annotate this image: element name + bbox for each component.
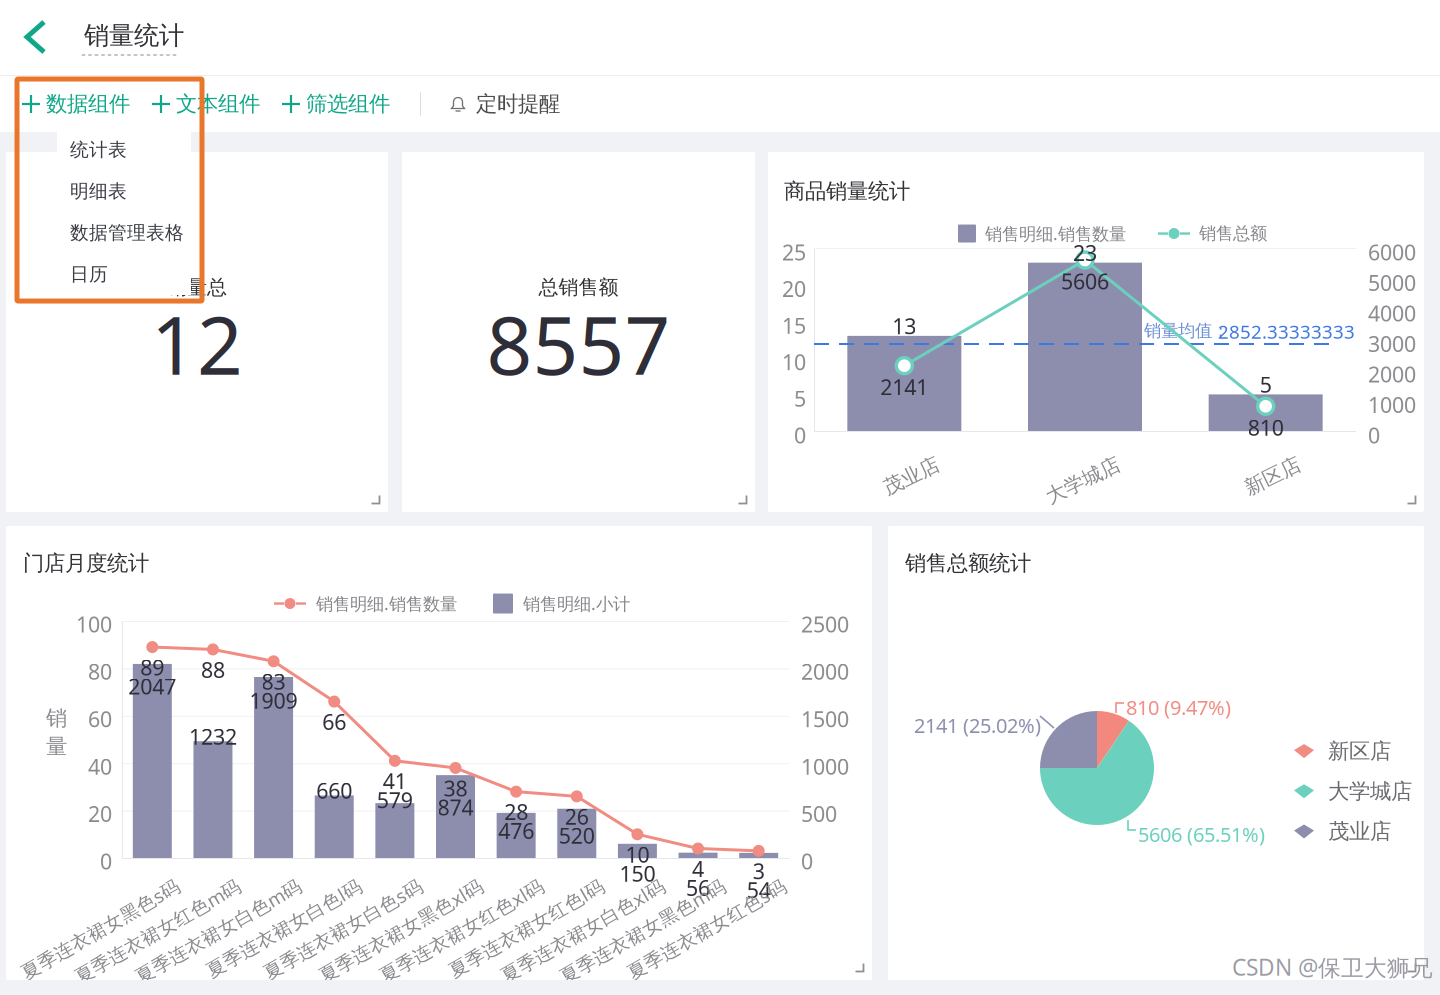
staticText: 销售明细.小计 (523, 592, 630, 615)
button[interactable]: 数据组件 (22, 91, 130, 117)
staticText: 5 (794, 384, 806, 413)
staticText: CSDN @保卫大狮兄 (1232, 952, 1433, 982)
button[interactable]: Back (10, 0, 66, 75)
staticText: 4 (692, 854, 704, 883)
staticText: 60 (88, 705, 112, 733)
staticText: 660 (316, 776, 352, 805)
staticText: 销售明细.销售数量 (316, 592, 457, 615)
staticText: 810 (1248, 413, 1284, 442)
staticText: 5000 (1368, 268, 1416, 297)
staticText: 销售总额统计 (905, 550, 1031, 576)
staticText: 茂业店 (1328, 818, 1391, 845)
staticText: 新区店 (1240, 451, 1300, 475)
button[interactable]: Resize widget (852, 960, 868, 976)
staticText: 89 (140, 653, 164, 681)
staticText: 明细表 (70, 180, 127, 203)
staticText: 15 (782, 311, 806, 339)
button[interactable]: 数据管理表格 (57, 212, 191, 253)
staticText: 数据组件 (46, 91, 130, 117)
staticText: 4000 (1368, 299, 1416, 327)
staticText: 80 (88, 657, 112, 686)
button[interactable]: 文本组件 (152, 91, 260, 117)
staticText: 476 (498, 817, 534, 845)
staticText: 874 (437, 793, 473, 821)
staticText: 夏季连衣裙女红色m码 (51, 872, 239, 896)
staticText: 5606 (1061, 267, 1109, 295)
staticText: 28 (504, 798, 528, 826)
staticText: 5606 (65.51%) (1138, 821, 1265, 848)
staticText: 2000 (801, 657, 849, 686)
staticText: 1909 (250, 686, 298, 715)
staticText: 销 (46, 705, 67, 731)
button[interactable]: Resize widget (735, 492, 751, 508)
staticText: 8557 (486, 291, 670, 397)
staticText: 54 (747, 876, 771, 904)
staticText: 2047 (128, 672, 176, 700)
staticText: 26 (565, 802, 589, 831)
staticText: 23 (1073, 239, 1097, 267)
staticText: 12 (151, 291, 243, 397)
staticText: 20 (88, 800, 112, 828)
staticText: 日历 (70, 263, 108, 286)
button[interactable]: 定时提醒 (449, 91, 560, 117)
staticText: 3 (753, 857, 765, 885)
button[interactable]: Resize widget (1404, 960, 1420, 976)
staticText: 商品销量统计 (784, 178, 910, 204)
staticText: 520 (559, 821, 595, 850)
staticText: 销售明细.销售数量 (985, 222, 1126, 245)
staticText: 150 (619, 859, 655, 888)
staticText: 500 (801, 800, 837, 828)
staticText: 41 (383, 767, 407, 795)
staticText: 大学城店 (1039, 451, 1119, 475)
staticText: 销售总额 (1199, 223, 1267, 244)
button[interactable]: 日历 (57, 253, 191, 295)
staticText: 2852.33333333 (1218, 319, 1355, 344)
staticText: 13 (892, 312, 916, 340)
staticText: 夏季连衣裙女红色s码 (605, 872, 785, 896)
staticText: 夏季连衣裙女黑色m码 (536, 872, 724, 896)
staticText: 0 (794, 421, 806, 449)
button[interactable]: Resize widget (368, 492, 384, 508)
staticText: 销量总 (167, 275, 227, 300)
staticText: 0 (801, 847, 813, 875)
staticText: 2141 (880, 373, 928, 401)
staticText: 数据管理表格 (70, 221, 184, 244)
staticText: 10 (782, 348, 806, 376)
staticText: 40 (88, 752, 112, 780)
staticText: 5 (1260, 370, 1272, 399)
staticText: 统计表 (70, 138, 127, 161)
staticText: 量 (46, 733, 67, 759)
staticText: 夏季连衣裙女红色l码 (427, 872, 603, 896)
staticText: 810 (9.47%) (1126, 694, 1231, 721)
staticText: 总销售额 (538, 275, 618, 300)
button[interactable]: 统计表 (57, 129, 191, 170)
staticText: 夏季连衣裙女白色m码 (112, 872, 300, 896)
staticText: 夏季连衣裙女黑色xl码 (295, 872, 481, 896)
staticText: 筛选组件 (306, 91, 390, 117)
button[interactable]: 筛选组件 (282, 91, 390, 117)
staticText: 新区店 (1328, 738, 1391, 764)
staticText: 额 (885, 737, 906, 764)
staticText: 1000 (1368, 390, 1416, 419)
staticText: 销量均值： (1144, 320, 1229, 341)
staticText: 10 (625, 840, 649, 869)
staticText: 1500 (801, 705, 849, 733)
staticText: 2500 (801, 610, 849, 638)
staticText: 6000 (1368, 238, 1416, 266)
button[interactable]: Resize widget (1404, 492, 1420, 508)
staticText: 定时提醒 (476, 91, 560, 117)
staticText: 销 (885, 681, 906, 707)
staticText: 100 (76, 610, 112, 638)
staticText: 56 (686, 873, 710, 902)
staticText: 文本组件 (176, 91, 260, 117)
staticText: 夏季连衣裙女黑色s码 (0, 872, 178, 896)
staticText: 0 (1368, 421, 1380, 449)
staticText: 1000 (801, 752, 849, 780)
staticText: 夏季连衣裙女白色s码 (241, 872, 421, 896)
staticText: 售 (885, 709, 906, 735)
button[interactable]: 明细表 (57, 170, 191, 212)
staticText: 66 (322, 708, 346, 736)
staticText: 0 (100, 847, 112, 875)
staticText: 大学城店 (1328, 778, 1412, 804)
staticText: 83 (262, 667, 286, 696)
